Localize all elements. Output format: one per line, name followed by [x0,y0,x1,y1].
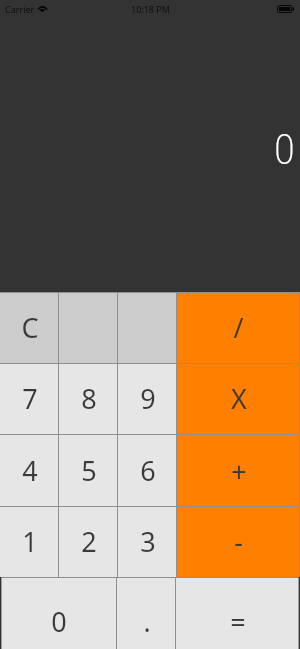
button[interactable]: 2 [59,506,118,577]
staticText: - [234,523,243,560]
staticText: 7 [22,380,38,417]
button[interactable]: = [176,577,300,649]
staticText: 4 [22,452,38,489]
staticText: 8 [81,380,97,417]
staticText: 10:18 PM [131,3,170,15]
staticText: 5 [81,452,97,489]
button[interactable]: C [0,292,59,363]
staticText: 0 [274,124,295,174]
staticText: X [231,380,247,417]
button[interactable] [59,292,118,363]
staticText: + [231,453,247,490]
button[interactable]: 4 [0,434,59,506]
button[interactable]: 9 [118,363,177,434]
staticText: / [233,309,244,346]
button[interactable]: 8 [59,363,118,434]
staticText: 1 [22,523,38,560]
button[interactable]: 0 [0,577,117,649]
staticText: . [143,603,151,640]
button[interactable]: - [177,506,300,577]
button[interactable]: 1 [0,506,59,577]
button[interactable]: 6 [118,434,177,506]
button[interactable]: 7 [0,363,59,434]
button[interactable]: / [177,292,300,363]
staticText: 9 [140,380,156,417]
staticText: C [21,309,39,346]
button[interactable]: 3 [118,506,177,577]
staticText: 3 [140,523,156,560]
button[interactable]: . [117,577,176,649]
staticText: = [230,603,246,640]
button[interactable]: + [177,434,300,506]
staticText: 6 [140,452,156,489]
button[interactable]: X [177,363,300,434]
button[interactable]: 5 [59,434,118,506]
staticText: 2 [81,523,97,560]
staticText: Carrier [5,3,35,15]
button[interactable] [118,292,177,363]
staticText: 0 [51,603,67,640]
